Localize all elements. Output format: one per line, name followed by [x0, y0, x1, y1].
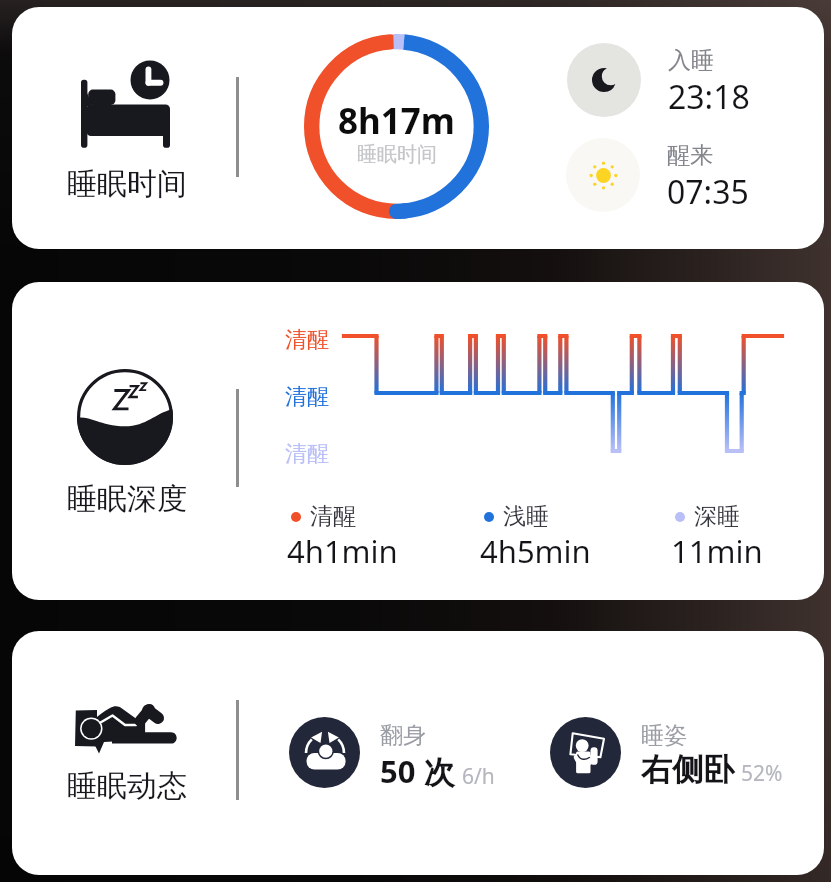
staticText: 6/h	[462, 762, 495, 791]
other: Sleep time	[81, 61, 170, 148]
staticText: 睡眠动态	[67, 767, 187, 805]
staticText: 翻身	[380, 721, 426, 750]
staticText: 深睡	[694, 502, 740, 531]
button[interactable]: Sleep time	[12, 7, 824, 249]
button[interactable]: Sleep depth	[12, 282, 824, 600]
button[interactable]: 睡姿	[550, 717, 800, 788]
staticText: 醒来	[667, 141, 713, 170]
button[interactable]: 深睡	[675, 501, 824, 572]
staticText: 23:18	[668, 75, 750, 119]
button[interactable]: 清醒	[291, 501, 471, 572]
staticText: 浅睡	[503, 502, 549, 531]
button[interactable]: 入睡	[567, 43, 797, 117]
staticText: 4h1min	[287, 530, 398, 572]
staticText: 52%	[741, 759, 783, 788]
button[interactable]: 浅睡	[484, 501, 664, 572]
staticText: 清醒	[285, 440, 329, 468]
other: Sleep depth	[77, 369, 173, 465]
other: Sleep dynamics	[74, 703, 178, 757]
staticText: 睡眠深度	[67, 480, 187, 518]
staticText: 右侧卧	[641, 750, 734, 789]
staticText: 07:35	[667, 170, 749, 214]
button[interactable]: 醒来	[566, 138, 796, 212]
staticText: 睡眠时间	[357, 142, 437, 167]
staticText: 清醒	[285, 383, 329, 411]
button[interactable]: 翻身	[289, 717, 539, 788]
staticText: 清醒	[310, 502, 356, 531]
staticText: 睡眠时间	[67, 165, 187, 203]
staticText: 50 次	[380, 750, 455, 792]
staticText: 清醒	[285, 326, 329, 354]
staticText: 8h17m	[338, 97, 455, 145]
staticText: 4h5min	[480, 530, 591, 572]
staticText: 睡姿	[641, 721, 687, 750]
staticText: 入睡	[668, 46, 714, 75]
button[interactable]: Sleep dynamics	[12, 631, 824, 875]
staticText: 11min	[671, 530, 763, 572]
